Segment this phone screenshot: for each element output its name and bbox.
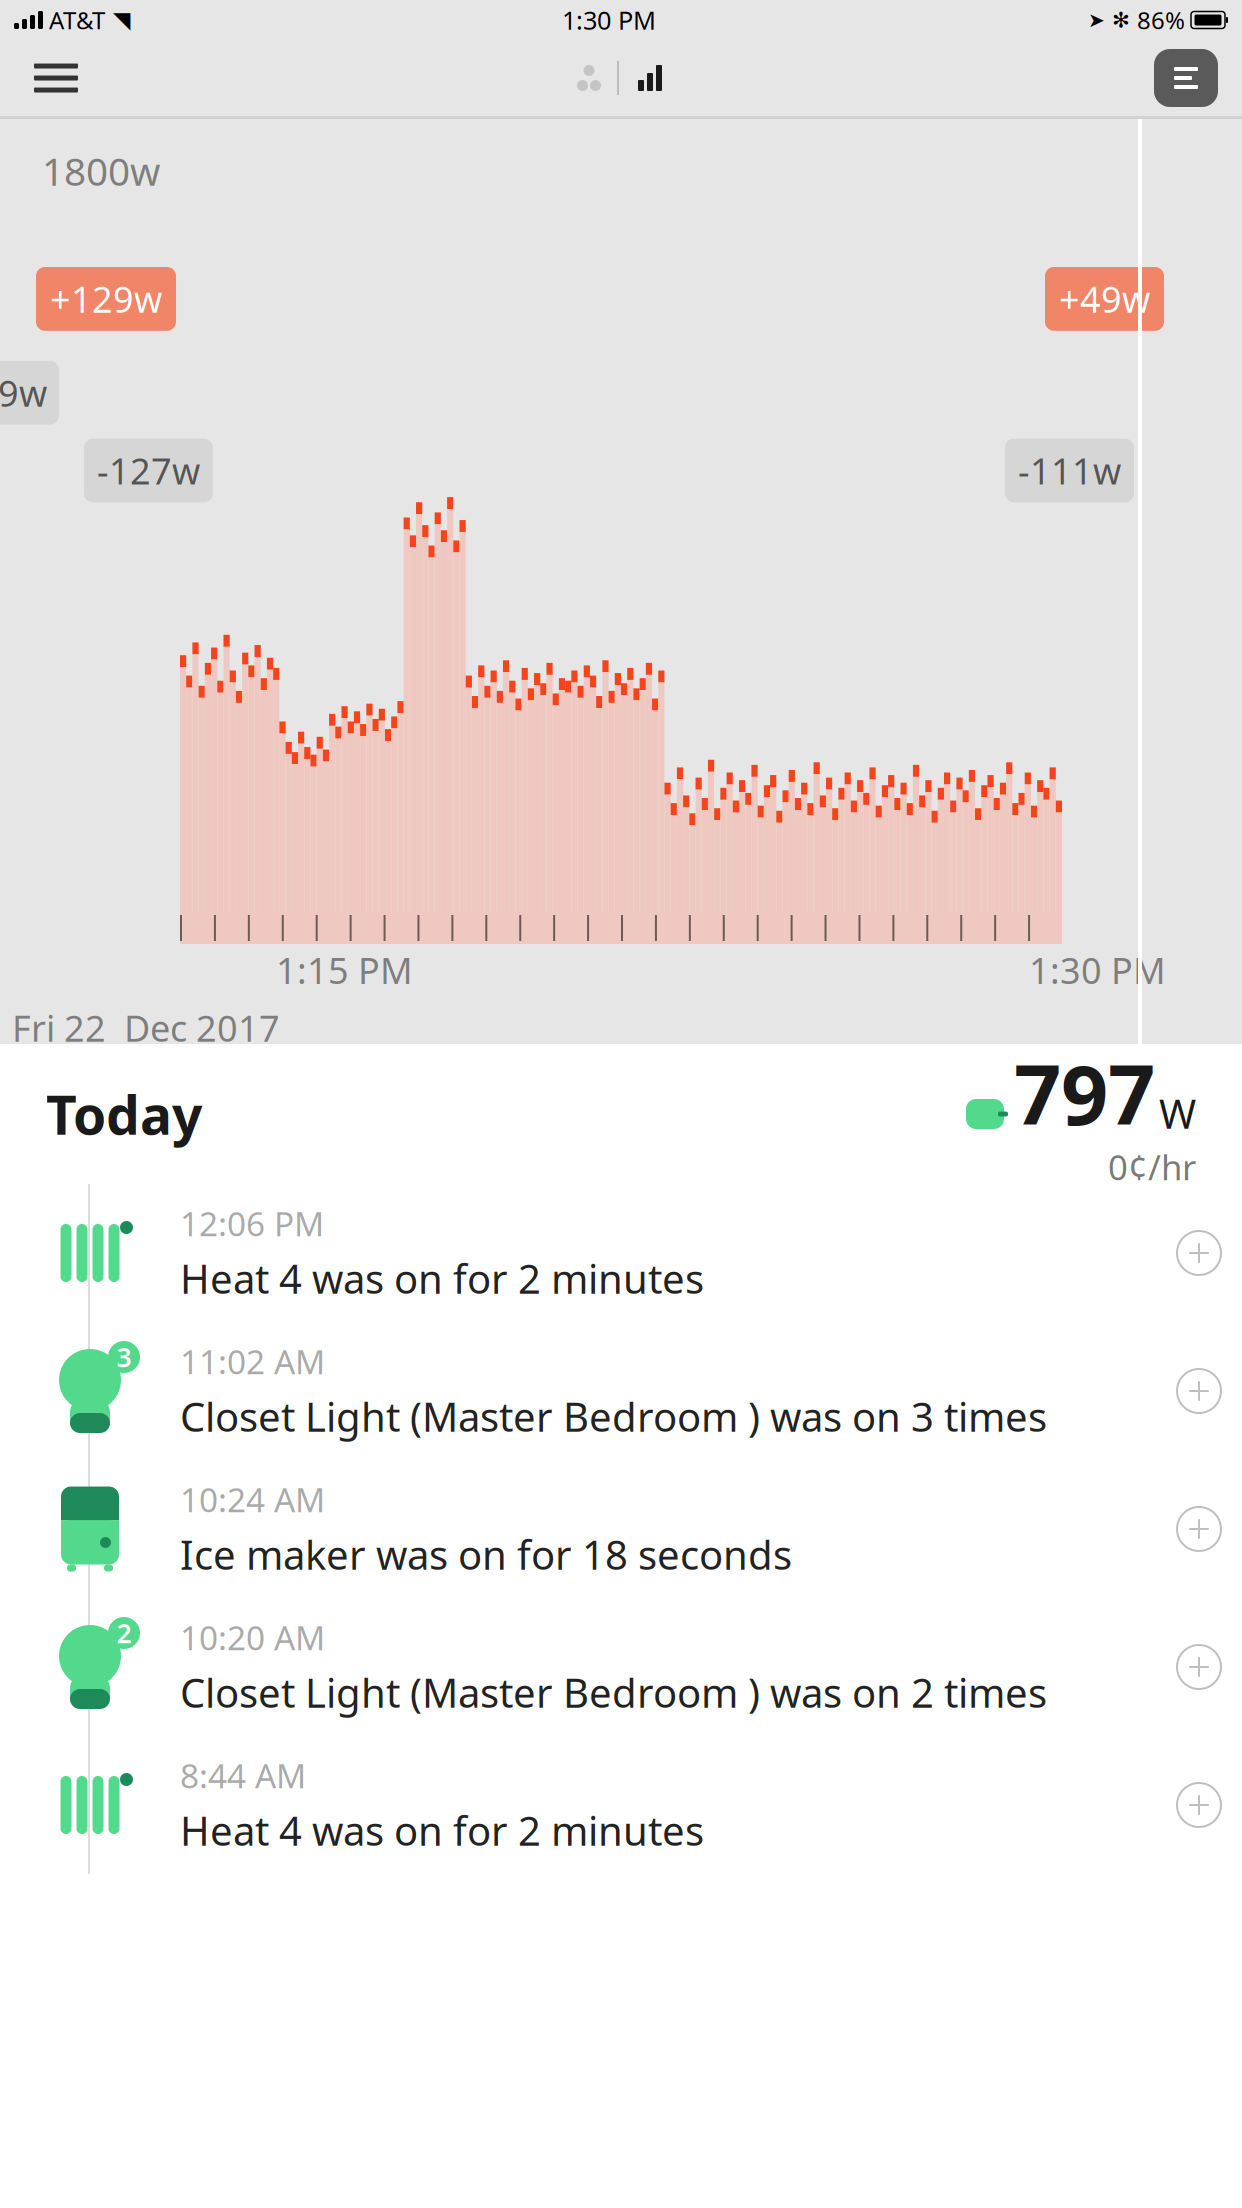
staticText: 1:30 PM (1029, 946, 1166, 994)
staticText: ✻ (1112, 8, 1130, 32)
staticText: 9w (0, 369, 47, 417)
staticText: 1800w (42, 145, 160, 196)
staticText: Ice maker was on for 18 seconds (180, 1528, 792, 1581)
staticText: Closet Light (Master Bedroom ) was on 3 … (180, 1390, 1047, 1443)
staticText: 1:30 PM (562, 3, 656, 37)
staticText: 797 (1014, 1038, 1155, 1148)
staticText: Today (46, 1079, 202, 1149)
staticText: 8:44 AM (180, 1753, 306, 1798)
staticText: 2 (116, 1615, 131, 1651)
button[interactable]: Menu (14, 48, 98, 108)
button[interactable]: Messages (1144, 48, 1228, 108)
staticText: +49w (1059, 275, 1150, 323)
button[interactable]: 3 (0, 1322, 1242, 1460)
button[interactable]: 2 (0, 1598, 1242, 1736)
button[interactable]: 8:44 AM (0, 1736, 1242, 1874)
staticText: Heat 4 was on for 2 minutes (180, 1252, 704, 1305)
staticText: W (1159, 1087, 1196, 1140)
button[interactable]: Add (1156, 1762, 1242, 1848)
button[interactable]: Devices (561, 49, 617, 107)
staticText: ➤ (1088, 9, 1105, 31)
staticText: 0¢/hr (1108, 1144, 1196, 1190)
staticText: -127w (97, 447, 200, 494)
button[interactable]: 12:06 PM (0, 1184, 1242, 1322)
button[interactable]: 10:24 AM (0, 1460, 1242, 1598)
button[interactable]: Add (1156, 1624, 1242, 1710)
staticText: 10:20 AM (180, 1615, 325, 1660)
staticText: -111w (1018, 447, 1121, 494)
staticText: 12:06 PM (180, 1201, 324, 1246)
staticText: ◥ (113, 7, 130, 33)
staticText: 11:02 AM (180, 1339, 325, 1384)
staticText: +129w (50, 275, 162, 323)
staticText: 10:24 AM (180, 1477, 325, 1522)
staticText: 86% (1137, 4, 1185, 36)
staticText: Closet Light (Master Bedroom ) was on 2 … (180, 1666, 1047, 1719)
staticText: Fri 22 Dec 2017 (12, 1004, 280, 1052)
staticText: AT&T (49, 4, 105, 36)
button[interactable]: Add (1156, 1210, 1242, 1296)
button[interactable]: Add (1156, 1486, 1242, 1572)
button[interactable]: Usage (619, 49, 681, 107)
staticText: Heat 4 was on for 2 minutes (180, 1804, 704, 1857)
staticText: 3 (116, 1339, 131, 1375)
staticText: 1:15 PM (276, 946, 413, 994)
button[interactable]: Add (1156, 1348, 1242, 1434)
